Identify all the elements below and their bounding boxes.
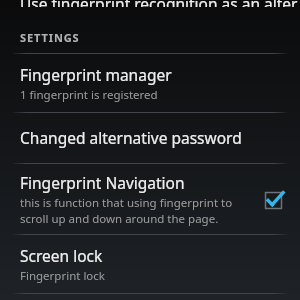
- staticText: Changed alternative password: [20, 127, 242, 148]
- button[interactable]: Fingerprint manager: [0, 54, 300, 112]
- staticText: this is function that using fingerprint …: [20, 195, 233, 211]
- button[interactable]: Changed alternative password: [0, 113, 300, 163]
- staticText: scroll up and down around the page.: [20, 211, 219, 227]
- button[interactable]: Fingerprint Navigation checkbox, checked: [258, 185, 288, 215]
- staticText: Use fingerprint recognition as an alter: [20, 0, 298, 7]
- button[interactable]: Use fingerprint recognition as an alter: [0, 0, 300, 14]
- staticText: SETTINGS: [20, 30, 80, 45]
- staticText: 1 fingerprint is registered: [20, 87, 158, 103]
- button[interactable]: Fingerprint Navigation: [0, 164, 300, 234]
- staticText: Screen lock: [20, 245, 103, 266]
- staticText: Fingerprint manager: [20, 64, 172, 85]
- button[interactable]: Screen lock: [0, 235, 300, 293]
- staticText: Fingerprint Navigation: [20, 172, 185, 193]
- staticText: Fingerprint lock: [20, 268, 105, 284]
